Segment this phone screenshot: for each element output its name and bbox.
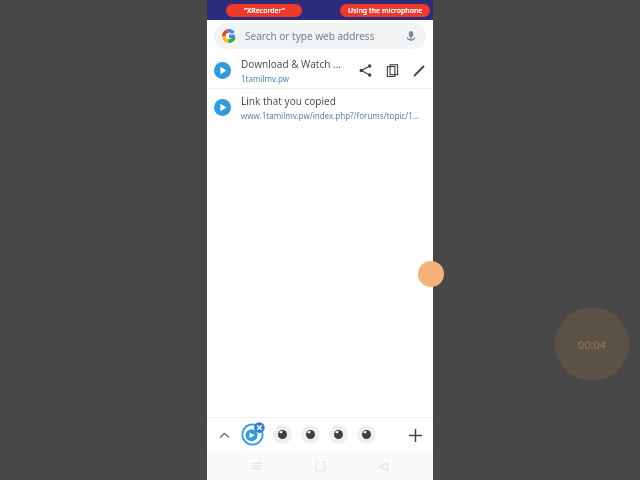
- staticText: Download & Watch ...: [241, 57, 342, 71]
- staticText: 00:04: [578, 337, 607, 352]
- staticText: Search or type web address: [245, 29, 404, 43]
- button[interactable]: "XRecorder": [226, 4, 302, 17]
- button[interactable]: Tab: [301, 425, 320, 444]
- button[interactable]: Recorder bubble: [418, 261, 444, 287]
- staticText: www.1tamilmv.pw/index.php?/forums/topic/…: [241, 110, 420, 121]
- button[interactable]: Download & Watch ...: [207, 52, 433, 88]
- button[interactable]: Voice search: [404, 29, 418, 43]
- button[interactable]: Back: [370, 453, 396, 479]
- button[interactable]: Share: [358, 63, 373, 78]
- staticText: Link that you copied: [241, 94, 336, 108]
- button[interactable]: Recents: [244, 453, 270, 479]
- button[interactable]: Tab: [273, 425, 292, 444]
- button[interactable]: Current tab: [241, 423, 264, 446]
- button[interactable]: Home: [307, 453, 333, 479]
- button[interactable]: Tab: [329, 425, 348, 444]
- staticText: 1tamilmv.pw: [241, 73, 289, 84]
- staticText: Using the microphone: [348, 6, 423, 16]
- button[interactable]: Expand: [213, 424, 235, 446]
- button[interactable]: Search or type web address: [214, 23, 426, 49]
- button[interactable]: Edit: [412, 63, 427, 78]
- staticText: "XRecorder": [244, 6, 285, 16]
- button[interactable]: Tab: [357, 425, 376, 444]
- button[interactable]: Copy: [385, 63, 400, 78]
- button[interactable]: New tab: [403, 423, 427, 447]
- button[interactable]: Using the microphone: [340, 4, 430, 17]
- button[interactable]: Link that you copied: [207, 89, 433, 125]
